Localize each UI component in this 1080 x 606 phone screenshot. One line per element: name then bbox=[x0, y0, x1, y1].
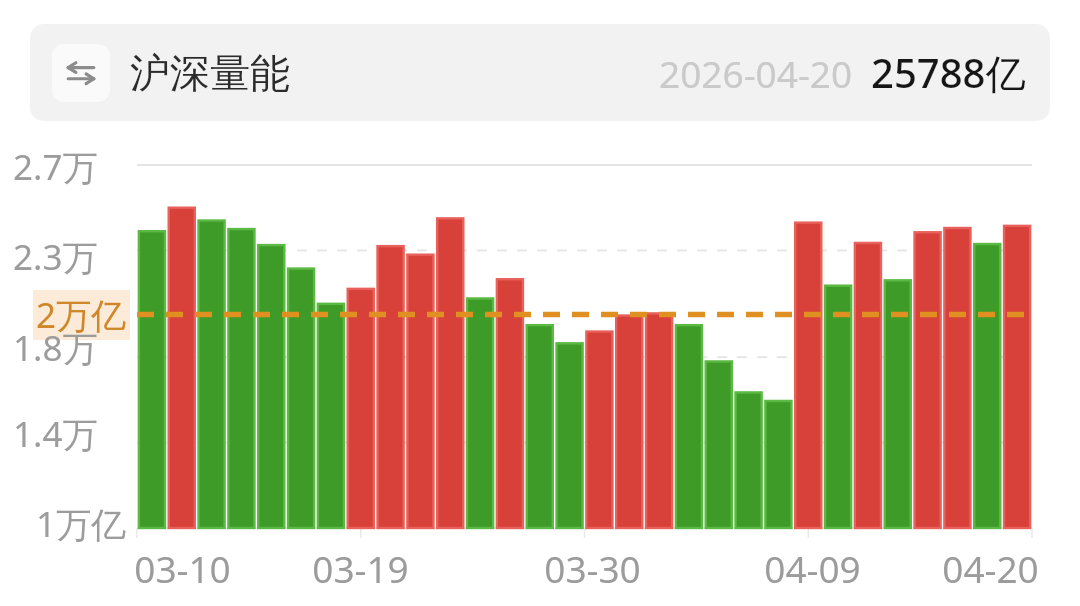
staticText: 1.4万亿 bbox=[13, 410, 127, 458]
staticText: 03-30 bbox=[544, 543, 641, 593]
staticText: 25788亿 bbox=[871, 45, 1026, 100]
staticText: 1.8万亿 bbox=[13, 324, 127, 372]
button[interactable]: Switch chart bbox=[30, 24, 1050, 121]
staticText: 2026-04-20 bbox=[659, 48, 853, 98]
staticText: 04-20 bbox=[942, 543, 1039, 593]
staticText: 1万亿 bbox=[36, 500, 127, 548]
staticText: 03-19 bbox=[312, 543, 409, 593]
staticText: 沪深量能 bbox=[130, 48, 290, 98]
staticText: 04-09 bbox=[764, 543, 861, 593]
button[interactable]: Switch chart bbox=[52, 44, 110, 102]
staticText: 2.7万亿 bbox=[13, 143, 127, 191]
staticText: 2.3万亿 bbox=[13, 233, 127, 281]
staticText: 2万亿 bbox=[36, 291, 127, 339]
staticText: 03-10 bbox=[134, 543, 231, 593]
